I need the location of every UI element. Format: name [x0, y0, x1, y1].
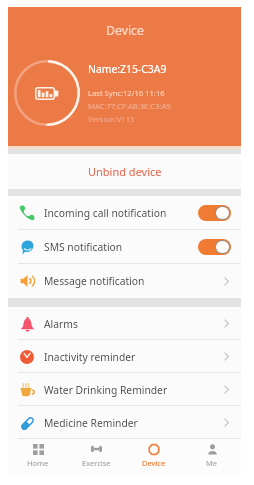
staticText: Name:Z15-C3A9: [88, 62, 167, 76]
button[interactable]: Toggle on: [198, 239, 231, 255]
staticText: MAC:77:CF:AB:3E:C3:A9: [88, 101, 171, 111]
button[interactable]: Medicine Reminder: [8, 406, 241, 439]
staticText: Version:V113: [88, 114, 135, 124]
button[interactable]: Device: [125, 439, 183, 475]
button[interactable]: Unbind device: [8, 154, 241, 189]
staticText: Last Sync:12/16 11:16: [88, 88, 165, 98]
button[interactable]: Toggle on: [198, 205, 231, 221]
staticText: Exercise: [82, 458, 111, 468]
button[interactable]: Water Drinking Reminder: [8, 373, 241, 406]
staticText: Me: [206, 458, 218, 468]
staticText: Device: [142, 458, 166, 468]
staticText: Device: [106, 22, 144, 39]
button[interactable]: Message notification: [8, 264, 241, 298]
button[interactable]: Incoming call notification: [8, 196, 241, 230]
staticText: Message notification: [44, 274, 145, 288]
staticText: Alarms: [44, 317, 78, 331]
button[interactable]: SMS notification: [8, 230, 241, 264]
button[interactable]: Alarms: [8, 307, 241, 340]
staticText: Incoming call notification: [44, 206, 167, 220]
staticText: Inactivity reminder: [44, 350, 136, 364]
staticText: Unbind device: [88, 164, 162, 179]
button[interactable]: Exercise: [67, 439, 125, 475]
button[interactable]: Me: [183, 439, 241, 475]
button[interactable]: Home: [8, 439, 67, 475]
button[interactable]: Inactivity reminder: [8, 340, 241, 373]
staticText: Water Drinking Reminder: [44, 383, 168, 397]
staticText: Medicine Reminder: [44, 416, 138, 430]
staticText: SMS notification: [44, 240, 123, 254]
staticText: Home: [27, 458, 49, 468]
